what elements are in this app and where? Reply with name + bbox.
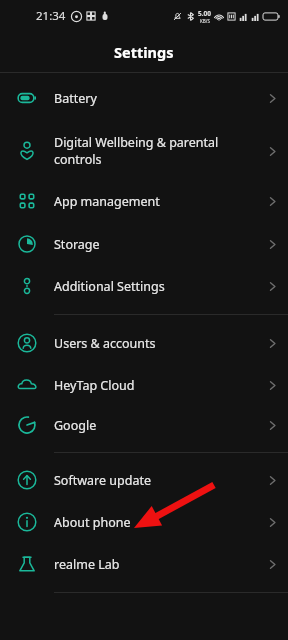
staticText: Users & accounts — [54, 335, 156, 352]
button[interactable]: Battery — [0, 73, 288, 123]
button[interactable]: Additional Settings — [0, 265, 288, 307]
staticText: Google — [54, 417, 97, 434]
button[interactable]: HeyTap Cloud — [0, 365, 288, 405]
staticText: Settings — [114, 42, 174, 62]
button[interactable]: Storage — [0, 223, 288, 265]
staticText: App management — [54, 193, 160, 210]
staticText: HeyTap Cloud — [54, 377, 135, 394]
button[interactable]: Software update — [0, 459, 288, 501]
button[interactable]: App management — [0, 179, 288, 223]
button[interactable]: Digital Wellbeing & parental controls — [0, 123, 288, 179]
staticText: realme Lab — [54, 556, 120, 573]
button[interactable]: Google — [0, 405, 288, 445]
staticText: Digital Wellbeing & parental controls — [54, 134, 219, 168]
staticText: 21:34 — [36, 8, 66, 24]
staticText: Additional Settings — [54, 278, 165, 295]
staticText: Storage — [54, 236, 100, 253]
staticText: 5.00 — [198, 9, 211, 18]
staticText: KB/S — [200, 18, 210, 24]
button[interactable]: Users & accounts — [0, 321, 288, 365]
staticText: Software update — [54, 472, 151, 489]
button[interactable]: About phone — [0, 501, 288, 543]
staticText: About phone — [54, 514, 131, 531]
button[interactable]: realme Lab — [0, 543, 288, 585]
staticText: Battery — [54, 90, 97, 107]
